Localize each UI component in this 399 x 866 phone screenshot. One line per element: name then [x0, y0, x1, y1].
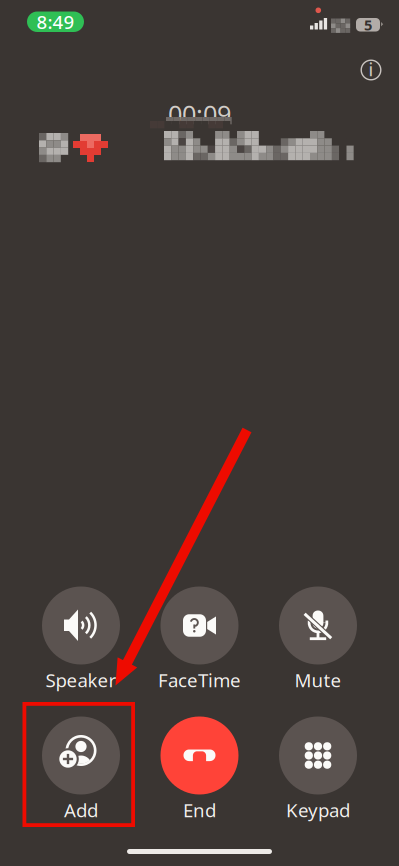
- button[interactable]: Add: [25, 712, 137, 818]
- staticText: 8:49: [36, 9, 74, 34]
- button[interactable]: FaceTime: [143, 582, 255, 688]
- staticText: 00:09: [168, 97, 231, 131]
- button[interactable]: Mute: [262, 582, 374, 688]
- staticText: Mute: [294, 668, 341, 692]
- staticText: Keypad: [286, 798, 350, 822]
- staticText: Speaker: [45, 668, 116, 692]
- staticText: i: [368, 58, 373, 81]
- staticText: End: [183, 798, 216, 822]
- staticText: Add: [64, 798, 98, 822]
- button[interactable]: Keypad: [262, 712, 374, 818]
- staticText: 5: [364, 15, 372, 34]
- staticText: FaceTime: [158, 668, 241, 692]
- button[interactable]: Speaker: [25, 582, 137, 688]
- button[interactable]: Call info: [351, 50, 391, 90]
- button[interactable]: End: [143, 712, 255, 818]
